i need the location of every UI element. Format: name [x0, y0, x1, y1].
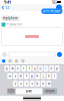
staticText: Preview title: [7, 23, 23, 26]
button[interactable]: a: [7, 73, 12, 79]
staticText: h: [37, 74, 39, 78]
button[interactable]: k: [46, 73, 51, 79]
button[interactable]: 123: [7, 88, 15, 94]
staticText: space: [25, 89, 32, 93]
staticText: m: [48, 82, 50, 85]
button[interactable]: z: [13, 81, 17, 87]
staticText: 123: [8, 89, 14, 93]
button[interactable]: q: [4, 65, 9, 71]
button[interactable]: Add: [2, 52, 7, 57]
staticText: c: [26, 82, 27, 85]
staticText: t: [29, 67, 30, 70]
staticText: q: [6, 67, 8, 70]
staticText: a: [9, 74, 10, 78]
staticText: r: [23, 67, 24, 70]
button[interactable]: u: [38, 65, 43, 71]
button[interactable]: v: [30, 81, 34, 87]
staticText: z: [15, 82, 16, 85]
staticText: y: [34, 67, 35, 70]
button[interactable]: p: [55, 65, 59, 71]
staticText: b: [37, 82, 39, 85]
button[interactable]: o: [49, 65, 54, 71]
staticText: n: [42, 82, 44, 85]
button[interactable]: f: [24, 73, 29, 79]
button[interactable]: h: [35, 73, 40, 79]
button[interactable]: t: [27, 65, 31, 71]
button[interactable]: w: [10, 65, 15, 71]
staticText: 12: [5, 5, 9, 10]
button[interactable]: e: [16, 65, 20, 71]
staticText: p: [56, 67, 58, 70]
staticText: x: [20, 82, 21, 85]
staticText: return: [45, 89, 54, 93]
staticText: e: [17, 67, 19, 70]
staticText: 9:41: [4, 0, 11, 5]
button[interactable]: Contact: [56, 4, 64, 10]
staticText: w: [11, 67, 13, 70]
staticText: sent message: [43, 9, 61, 13]
staticText: g: [31, 74, 33, 78]
button[interactable]: g: [30, 73, 34, 79]
staticText: j: [43, 74, 44, 78]
button[interactable]: y: [32, 65, 37, 71]
button[interactable]: n: [41, 81, 45, 87]
staticText: f: [26, 74, 27, 78]
staticText: 5G: [52, 0, 57, 5]
staticText: u: [39, 67, 41, 70]
button[interactable]: d: [18, 73, 23, 79]
button[interactable]: x: [18, 81, 23, 87]
staticText: d: [20, 74, 22, 78]
button[interactable]: c: [24, 81, 29, 87]
button[interactable]: i: [44, 65, 48, 71]
button[interactable]: return: [43, 88, 57, 94]
button[interactable]: Send: [57, 52, 62, 57]
staticText: o: [51, 67, 53, 70]
button[interactable]: l: [52, 73, 57, 79]
button[interactable]: s: [13, 73, 17, 79]
button[interactable]: 12: [0, 4, 9, 11]
button[interactable]: m: [46, 81, 51, 87]
staticText: reply here: [3, 16, 18, 20]
button[interactable]: j: [41, 73, 45, 79]
staticText: s: [15, 74, 16, 78]
button[interactable]: space: [16, 88, 42, 94]
button[interactable]: r: [21, 65, 26, 71]
staticText: k: [48, 74, 49, 78]
staticText: l: [54, 74, 55, 78]
button[interactable]: b: [35, 81, 40, 87]
